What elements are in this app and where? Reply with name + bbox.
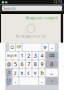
staticText: x bbox=[21, 69, 24, 76]
staticText: ⌫ bbox=[49, 53, 55, 58]
button[interactable]: 1 bbox=[19, 52, 25, 59]
staticText: 3 bbox=[34, 52, 37, 59]
staticText: v bbox=[34, 69, 37, 76]
staticText: ☺ bbox=[10, 45, 14, 49]
staticText: ?123 bbox=[7, 76, 11, 86]
staticText: 7 bbox=[27, 61, 30, 68]
button[interactable]: 8 bbox=[32, 60, 38, 68]
button[interactable]: ⌕ bbox=[46, 77, 58, 85]
staticText: English bbox=[7, 54, 17, 57]
button[interactable]: z bbox=[13, 69, 18, 76]
staticText: 9 bbox=[40, 61, 43, 68]
staticText: 1 bbox=[21, 52, 24, 59]
button[interactable]: ⚙ bbox=[42, 43, 48, 51]
button[interactable]: 0 bbox=[46, 60, 58, 68]
button[interactable]: v bbox=[32, 69, 38, 76]
button[interactable]: @ bbox=[6, 60, 12, 68]
button[interactable]: 2 bbox=[26, 52, 31, 59]
button[interactable]: . bbox=[39, 77, 45, 85]
button[interactable]: Search bbox=[2, 5, 62, 11]
staticText: ⬤ bbox=[1, 1, 4, 4]
staticText: ␣ bbox=[50, 70, 53, 75]
staticText: 5 bbox=[14, 61, 17, 68]
staticText: ⌕ bbox=[51, 79, 53, 83]
button[interactable] bbox=[19, 77, 38, 85]
staticText: GIF bbox=[17, 45, 21, 49]
button[interactable]: , bbox=[13, 77, 18, 85]
button[interactable]: ⌫ bbox=[46, 52, 58, 59]
button[interactable]: 9 bbox=[39, 60, 45, 68]
staticText: ⌄ bbox=[50, 45, 53, 49]
button[interactable]: English bbox=[6, 52, 18, 59]
staticText: 6 bbox=[21, 61, 24, 68]
button[interactable]: x bbox=[19, 69, 25, 76]
staticText: 12:56 bbox=[54, 0, 63, 4]
button[interactable]: ?123 bbox=[6, 77, 12, 85]
staticText: c bbox=[27, 69, 30, 76]
button[interactable]: 5 bbox=[13, 60, 18, 68]
staticText: 0 bbox=[50, 61, 53, 68]
staticText: ⚙ bbox=[43, 45, 47, 49]
button[interactable]: ☺ bbox=[9, 43, 15, 51]
staticText: , bbox=[15, 77, 16, 85]
staticText: Search bbox=[3, 5, 15, 11]
button[interactable]: 7 bbox=[26, 60, 31, 68]
button[interactable]: GIF bbox=[16, 43, 22, 51]
button[interactable]: ⇧ bbox=[6, 69, 12, 76]
staticText: z bbox=[14, 69, 17, 76]
button[interactable]: ⌄ bbox=[49, 43, 55, 51]
staticText: b bbox=[40, 69, 43, 76]
button[interactable] bbox=[22, 43, 41, 51]
staticText: 2 bbox=[27, 52, 30, 59]
button[interactable]: 4 bbox=[39, 52, 45, 59]
staticText: ▮▮ bbox=[5, 1, 7, 4]
staticText: @ bbox=[6, 61, 11, 68]
staticText: 8 bbox=[34, 61, 37, 68]
staticText: No messages here yet bbox=[16, 35, 46, 38]
staticText: . bbox=[41, 77, 42, 85]
staticText: Messages are encrypted bbox=[26, 16, 58, 20]
button[interactable]: c bbox=[26, 69, 31, 76]
button[interactable]: b bbox=[39, 69, 45, 76]
staticText: ⇧ bbox=[7, 70, 10, 75]
button[interactable]: 3 bbox=[32, 52, 38, 59]
button[interactable]: 6 bbox=[19, 60, 25, 68]
staticText: 4 bbox=[40, 52, 43, 59]
button[interactable]: ␣ bbox=[46, 69, 58, 76]
